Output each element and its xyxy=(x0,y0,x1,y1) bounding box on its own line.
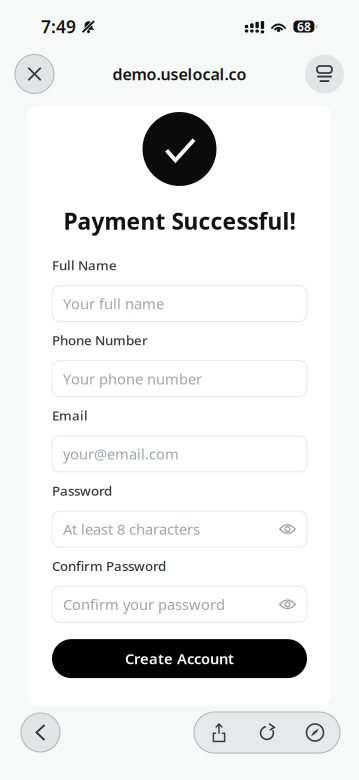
staticText: your@email.com xyxy=(63,444,179,464)
button[interactable]: Your full name xyxy=(52,285,307,321)
staticText: At least 8 characters xyxy=(63,519,200,539)
staticText: Payment Successful! xyxy=(63,206,295,236)
button[interactable]: Page settings xyxy=(305,54,344,93)
button[interactable]: Create Account xyxy=(52,639,307,678)
staticText: Full Name xyxy=(52,256,117,274)
staticText: Create Account xyxy=(125,649,234,668)
staticText: Password xyxy=(52,482,112,499)
button[interactable]: At least 8 characters xyxy=(52,511,307,547)
staticText: Email xyxy=(52,406,88,424)
staticText: Your full name xyxy=(63,294,164,313)
button[interactable]: Open in Safari xyxy=(291,712,339,753)
button[interactable]: Your phone number xyxy=(52,361,307,397)
staticText: 7:49 xyxy=(41,15,76,38)
button[interactable]: Reload xyxy=(243,712,291,753)
staticText: demo.uselocal.co xyxy=(112,63,246,85)
button[interactable]: Close xyxy=(15,54,54,93)
staticText: 68 xyxy=(297,18,311,34)
staticText: Confirm Password xyxy=(52,557,166,575)
staticText: Phone Number xyxy=(52,331,148,349)
staticText: Your phone number xyxy=(63,369,202,388)
button[interactable]: Back xyxy=(21,713,60,752)
button[interactable]: Confirm your password xyxy=(52,586,307,622)
staticText: Confirm your password xyxy=(63,595,225,614)
button[interactable]: Share xyxy=(195,712,243,753)
button[interactable]: your@email.com xyxy=(52,436,307,472)
